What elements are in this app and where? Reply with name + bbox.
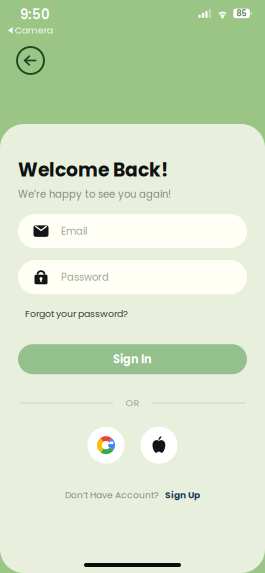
button[interactable]: Forgot your password? [18,304,128,323]
button[interactable]: Sign in with Google [87,427,124,464]
staticText: Welcome Back! [18,157,168,183]
staticText: Camera [15,24,53,37]
staticText: Sign Up [165,489,200,501]
button[interactable]: Sign In [18,344,247,374]
staticText: Email [61,224,87,238]
staticText: Don’t Have Account? [65,489,159,501]
button[interactable]: Sign in with Apple [140,427,177,464]
staticText: Forgot your password? [25,307,128,320]
button[interactable]: Sign Up [165,489,200,501]
staticText: Password [61,270,109,284]
button[interactable]: Back [16,46,45,75]
staticText: We’re happy to see you again! [18,187,171,201]
staticText: 9:50 [20,5,50,24]
button[interactable]: Password [18,260,247,294]
staticText: 85 [236,8,246,19]
staticText: OR [125,396,139,410]
staticText: Sign In [113,351,152,367]
button[interactable]: Email [18,214,247,248]
